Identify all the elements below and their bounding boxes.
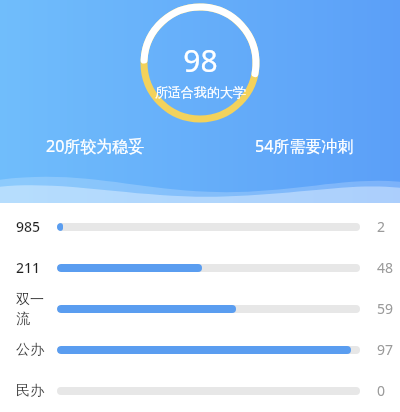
staticText: 59 [377,299,394,318]
staticText: 97 [377,340,394,359]
staticText: 20所较为稳妥 [46,135,145,157]
staticText: 98 [183,40,218,81]
staticText: 0 [377,381,386,400]
staticText: 211 [16,258,41,277]
staticText: 所适合我的大学 [155,84,246,100]
button[interactable]: 公办 [0,329,400,370]
staticText: 54所需要冲刺 [255,135,354,157]
staticText: 公办 [16,341,44,359]
staticText: 48 [377,258,394,277]
button[interactable]: 民办 [0,370,400,411]
staticText: 双一流 [16,291,57,327]
button[interactable]: 985 [0,206,400,247]
button[interactable]: 双一流 [0,288,400,329]
staticText: 民办 [16,382,44,400]
staticText: 2 [377,217,386,236]
button[interactable]: 211 [0,247,400,288]
button[interactable]: 54所需要冲刺 [253,133,356,159]
staticText: 985 [16,217,41,236]
button[interactable]: 20所较为稳妥 [44,133,147,159]
